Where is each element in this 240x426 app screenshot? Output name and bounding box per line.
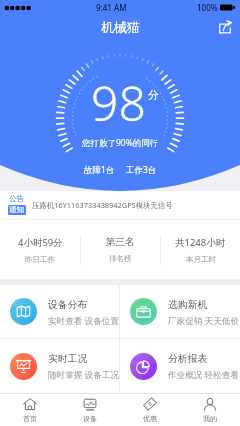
button[interactable]: 首页 <box>0 394 60 426</box>
staticText: 实时工况 <box>48 353 88 365</box>
staticText: 共1248小时 <box>175 236 226 249</box>
button[interactable]: 分享 <box>217 20 233 36</box>
button[interactable]: 4小时59分 <box>0 220 80 279</box>
staticText: 首页 <box>23 414 37 423</box>
staticText: 您打败了90%的同行 <box>82 137 159 149</box>
staticText: 第三名 <box>106 236 135 248</box>
button[interactable]: 分析报表 <box>120 339 240 393</box>
button[interactable]: 公告 <box>0 191 240 220</box>
staticText: 本月工时 <box>186 255 216 264</box>
button[interactable]: 共1248小时 <box>161 220 240 279</box>
staticText: 公告 <box>9 194 25 204</box>
staticText: 随时掌握 设备工况 <box>48 369 119 381</box>
button[interactable]: 第三名 <box>81 220 160 279</box>
button[interactable]: 设备 <box>60 394 120 426</box>
staticText: 4小时59分 <box>18 236 63 249</box>
staticText: 通知 <box>9 205 25 215</box>
staticText: 实时查看 设备位置 <box>48 315 119 327</box>
staticText: 分析报表 <box>168 353 208 365</box>
button[interactable]: 我的 <box>180 394 240 426</box>
button[interactable]: 优惠 <box>120 394 180 426</box>
staticText: 分 <box>148 88 159 102</box>
staticText: 9:41 AM <box>96 2 127 13</box>
staticText: 设备分布 <box>48 299 88 311</box>
staticText: 昨日工作 <box>25 255 55 264</box>
staticText: 机械猫 <box>101 19 140 35</box>
staticText: 厂家促销 天天低价 <box>168 315 239 327</box>
button[interactable]: 设备分布 <box>0 285 119 338</box>
staticText: 100% <box>197 2 218 13</box>
staticText: 作业概况 轻松查看 <box>168 369 239 381</box>
button[interactable]: 工作3台 <box>126 164 157 176</box>
staticText: 工作3台 <box>126 164 157 176</box>
staticText: 优惠 <box>143 414 157 423</box>
staticText: 设备 <box>83 414 97 423</box>
staticText: 压路机16Y1163733438942GPS模块无信号 <box>32 200 173 210</box>
staticText: 98 <box>91 70 146 135</box>
button[interactable]: 实时工况 <box>0 339 119 393</box>
staticText: 排名榜 <box>109 254 132 263</box>
button[interactable]: 故障1台 <box>84 164 115 176</box>
staticText: 选购新机 <box>168 299 208 311</box>
button[interactable]: 选购新机 <box>120 285 240 338</box>
staticText: 我的 <box>203 414 217 423</box>
staticText: 故障1台 <box>84 164 115 176</box>
